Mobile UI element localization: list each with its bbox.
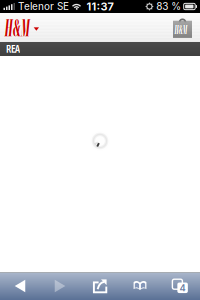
button[interactable]: Shopping bag bbox=[173, 17, 192, 38]
staticText: 11:37 bbox=[86, 0, 113, 13]
staticText: Telenor SE bbox=[18, 0, 69, 12]
button[interactable]: REA bbox=[0, 42, 26, 56]
staticText: H&M bbox=[168, 21, 194, 38]
button[interactable]: Forward bbox=[40, 272, 80, 300]
staticText: 4 bbox=[180, 282, 186, 293]
staticText: 83 % bbox=[156, 0, 181, 12]
button[interactable]: Tabs bbox=[160, 272, 200, 300]
staticText: H&M bbox=[0, 12, 42, 43]
button[interactable]: Bookmarks bbox=[120, 272, 160, 300]
staticText: REA bbox=[6, 43, 20, 55]
button[interactable]: Back bbox=[0, 272, 40, 300]
button[interactable]: Share bbox=[80, 272, 120, 300]
button[interactable]: H&M bbox=[5, 15, 39, 39]
